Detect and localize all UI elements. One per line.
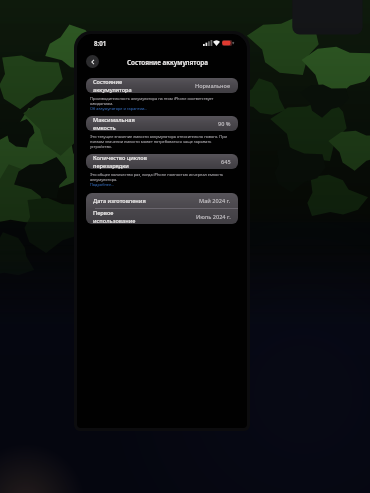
button[interactable]: Первое использование	[86, 209, 238, 224]
staticText: Количество циклов перезарядки	[93, 154, 157, 169]
staticText: Максимальная емкость	[93, 116, 155, 131]
staticText: Состояние аккумулятора	[93, 78, 144, 93]
staticText: Нормальное	[195, 82, 231, 90]
staticText: Это текущее значение емкости аккумулятор…	[90, 134, 234, 149]
staticText: Июль 2024 г.	[196, 213, 231, 221]
staticText: Производительность аккумулятора на этом …	[90, 96, 234, 106]
button[interactable]: Количество циклов перезарядки	[86, 154, 238, 169]
button[interactable]: Максимальная емкость	[86, 116, 238, 131]
staticText: Май 2024 г.	[199, 197, 231, 205]
button[interactable]: Подробнее…	[90, 182, 115, 187]
button[interactable]: Назад	[86, 55, 99, 68]
button[interactable]: Об аккумуляторе и гарантии…	[90, 106, 148, 111]
button[interactable]: Состояние аккумулятора	[86, 78, 238, 93]
staticText: Дата изготовления	[93, 197, 146, 205]
staticText: Первое использование	[93, 209, 144, 224]
staticText: Это общее количество раз, когда iPhone п…	[90, 172, 234, 182]
staticText: 645	[221, 158, 231, 166]
staticText: Состояние аккумулятора	[127, 58, 208, 67]
staticText: 90 %	[218, 120, 231, 128]
staticText: 8:01	[94, 39, 107, 47]
button[interactable]: Дата изготовления	[86, 193, 238, 208]
